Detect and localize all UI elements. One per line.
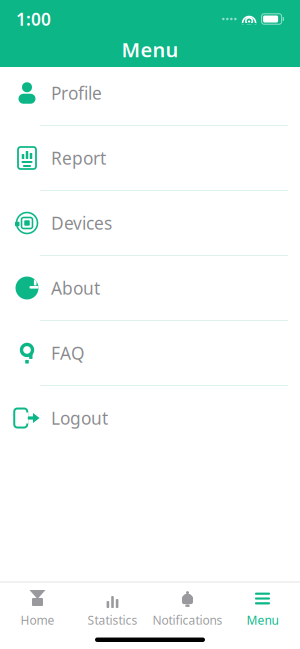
button[interactable]: Statistics [75, 586, 150, 630]
button[interactable]: Report [0, 132, 300, 184]
staticText: Statistics [87, 612, 137, 628]
button[interactable]: FAQ [0, 327, 300, 379]
staticText: Devices [51, 211, 112, 234]
button[interactable]: Logout [0, 392, 300, 444]
button[interactable]: Home [0, 586, 75, 630]
staticText: Notifications [152, 612, 222, 628]
button[interactable]: About [0, 262, 300, 314]
staticText: Report [51, 146, 106, 169]
button[interactable]: Menu [225, 586, 300, 630]
staticText: FAQ [51, 341, 85, 364]
button[interactable]: Devices [0, 197, 300, 249]
button[interactable]: Profile [0, 67, 300, 119]
staticText: Menu [246, 612, 278, 628]
staticText: Logout [51, 406, 108, 429]
button[interactable]: Notifications [150, 586, 225, 630]
staticText: Menu [121, 36, 178, 63]
staticText: Profile [51, 81, 102, 104]
staticText: About [51, 276, 100, 299]
staticText: Home [20, 612, 54, 628]
staticText: 1:00 [16, 7, 51, 30]
